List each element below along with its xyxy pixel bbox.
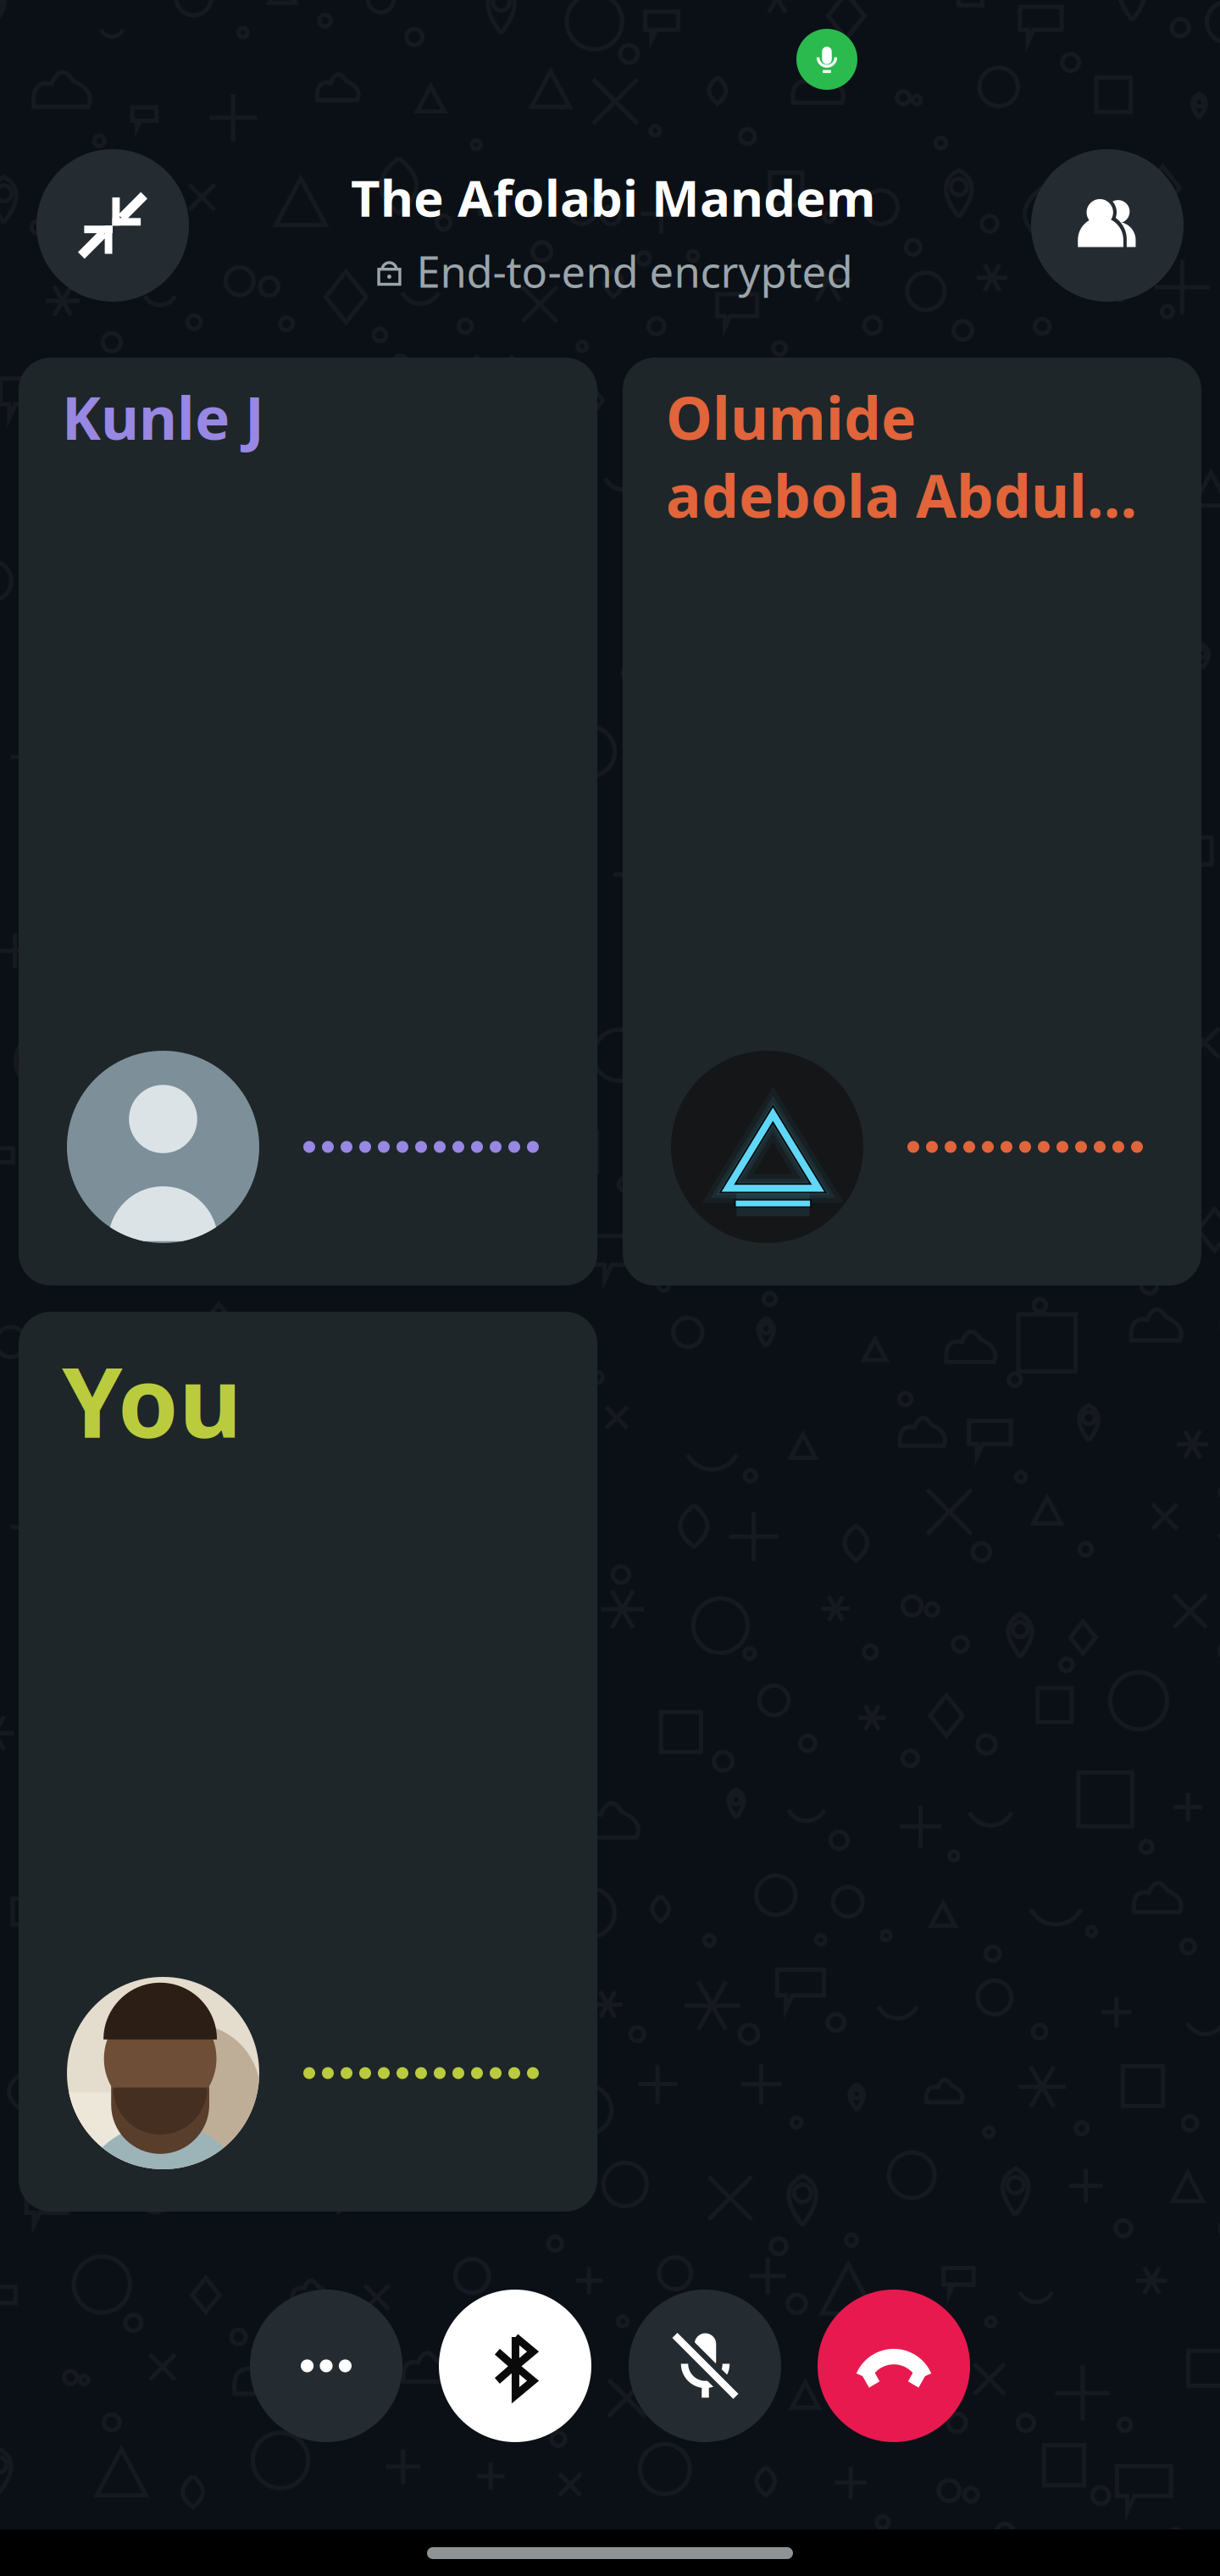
button[interactable]: Minimize call	[36, 149, 189, 302]
button[interactable]: You	[19, 1312, 597, 2212]
staticText: Olumide adebola Abdul…	[666, 378, 1137, 534]
staticText: End-to-end encrypted	[416, 243, 853, 300]
button[interactable]: Olumide adebola Abdul…	[623, 358, 1201, 1285]
button[interactable]: Kunle J	[19, 358, 597, 1285]
button[interactable]: End call	[818, 2290, 970, 2442]
button[interactable]: Participants	[1031, 149, 1184, 302]
staticText: Kunle J	[62, 378, 264, 456]
button[interactable]: More options	[250, 2290, 402, 2442]
staticText: The Afolabi Mandem	[351, 163, 876, 231]
button[interactable]: Unmute microphone	[629, 2290, 781, 2442]
staticText: You	[62, 1335, 242, 1465]
button[interactable]: Bluetooth audio	[439, 2290, 591, 2442]
